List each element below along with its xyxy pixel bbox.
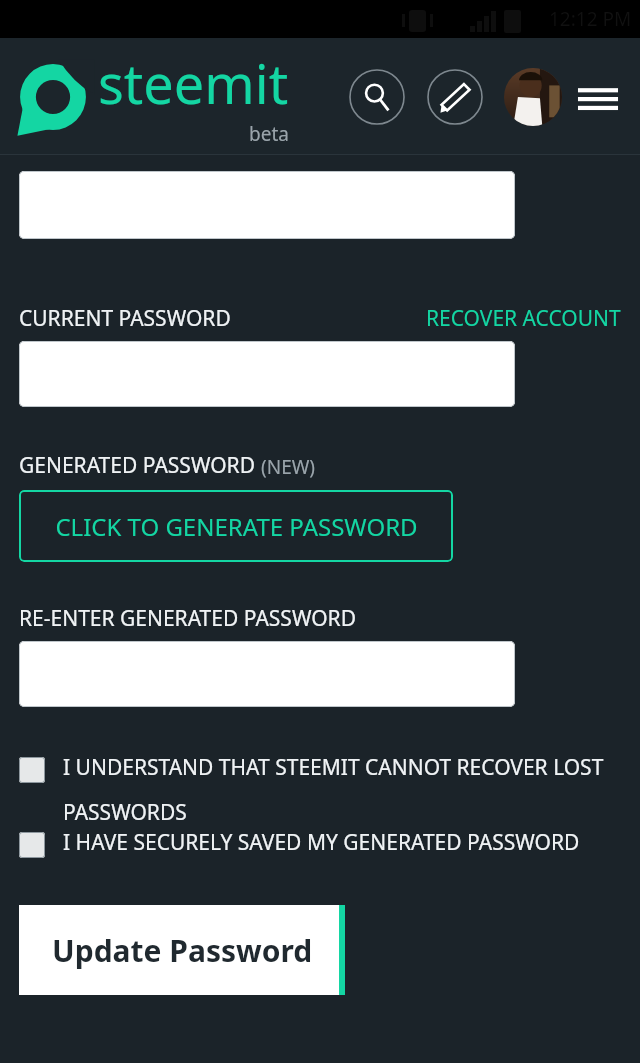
staticText: RE-ENTER GENERATED PASSWORD <box>19 604 357 633</box>
staticText: GENERATED PASSWORD <box>19 451 255 480</box>
staticText: Update Password <box>52 930 313 971</box>
staticText: beta <box>249 121 289 147</box>
button[interactable]: CLICK TO GENERATE PASSWORD <box>19 490 453 562</box>
button[interactable] <box>19 641 515 707</box>
button[interactable] <box>19 171 515 239</box>
button[interactable]: Write a post <box>427 69 483 125</box>
button[interactable]: I UNDERSTAND THAT STEEMIT CANNOT RECOVER… <box>19 753 621 826</box>
button[interactable]: Search <box>349 69 405 125</box>
staticText: I UNDERSTAND THAT STEEMIT CANNOT RECOVER… <box>63 753 621 826</box>
button[interactable]: Menu <box>572 71 624 123</box>
staticText: CLICK TO GENERATE PASSWORD <box>55 510 418 543</box>
button[interactable]: Profile <box>504 68 562 126</box>
button[interactable]: Update Password <box>19 905 339 995</box>
staticText: 12:12 PM <box>549 6 632 32</box>
staticText: RECOVER ACCOUNT <box>426 304 621 333</box>
button[interactable]: I HAVE SECURELY SAVED MY GENERATED PASSW… <box>19 828 621 858</box>
staticText: I HAVE SECURELY SAVED MY GENERATED PASSW… <box>63 828 580 857</box>
staticText: CURRENT PASSWORD <box>19 304 231 333</box>
staticText: steemit <box>98 46 289 120</box>
staticText: (NEW) <box>261 454 316 480</box>
button[interactable]: RECOVER ACCOUNT <box>426 304 621 333</box>
button[interactable]: Steemit home <box>16 60 90 134</box>
button[interactable] <box>19 341 515 407</box>
